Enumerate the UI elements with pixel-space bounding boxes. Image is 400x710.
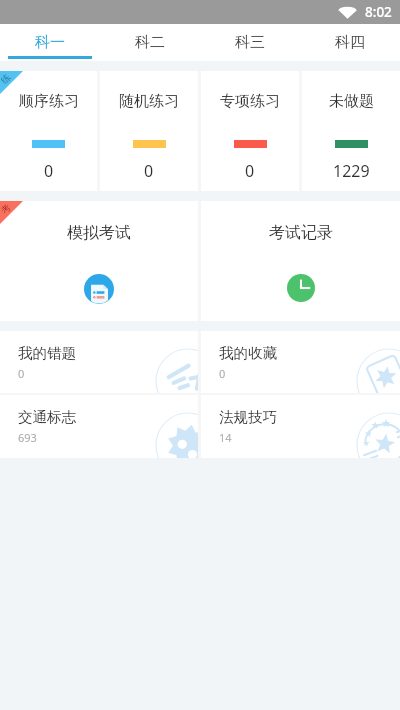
button[interactable]: 我的错题 bbox=[0, 331, 198, 393]
staticText: 我的收藏 bbox=[219, 344, 277, 362]
staticText: 科二 bbox=[135, 33, 165, 52]
staticText: 0 bbox=[219, 366, 226, 381]
button[interactable]: 法规技巧 bbox=[201, 395, 400, 458]
staticText: 科一 bbox=[35, 33, 65, 52]
staticText: 模拟考试 bbox=[67, 223, 131, 243]
staticText: 693 bbox=[18, 430, 37, 445]
button[interactable]: 交通标志 bbox=[0, 395, 198, 458]
staticText: 顺序练习 bbox=[19, 92, 79, 111]
staticText: 考试记录 bbox=[269, 223, 333, 243]
button[interactable]: 我的收藏 bbox=[201, 331, 400, 393]
staticText: 科三 bbox=[235, 33, 265, 52]
staticText: 交通标志 bbox=[18, 408, 76, 426]
staticText: 随机练习 bbox=[119, 92, 179, 111]
button[interactable]: 科四 bbox=[300, 24, 400, 61]
staticText: 0 bbox=[144, 160, 154, 182]
button[interactable]: 随机练习 bbox=[100, 71, 198, 191]
staticText: 0 bbox=[18, 366, 25, 381]
staticText: 我的错题 bbox=[18, 344, 76, 362]
staticText: 14 bbox=[219, 430, 232, 445]
staticText: 1229 bbox=[333, 160, 370, 182]
staticText: 0 bbox=[44, 160, 54, 182]
staticText: 法规技巧 bbox=[219, 408, 277, 426]
staticText: 8:02 bbox=[365, 3, 392, 21]
button[interactable]: 模拟考试 bbox=[0, 201, 198, 321]
button[interactable]: 专项练习 bbox=[201, 71, 299, 191]
staticText: 未做题 bbox=[329, 92, 374, 111]
button[interactable]: 考试记录 bbox=[201, 201, 400, 321]
staticText: 考 bbox=[0, 201, 12, 215]
button[interactable]: 科二 bbox=[100, 24, 200, 61]
button[interactable]: 未做题 bbox=[302, 71, 400, 191]
staticText: 0 bbox=[245, 160, 255, 182]
button[interactable]: 科三 bbox=[200, 24, 300, 61]
staticText: 科四 bbox=[335, 33, 365, 52]
staticText: 专项练习 bbox=[220, 92, 280, 111]
button[interactable]: 顺序练习 bbox=[0, 71, 97, 191]
button[interactable]: 科一 bbox=[0, 24, 100, 61]
staticText: 练 bbox=[0, 71, 12, 85]
